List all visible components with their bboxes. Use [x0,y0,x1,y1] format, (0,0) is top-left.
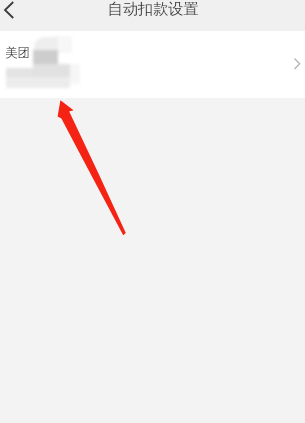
button[interactable]: 美团 [0,31,305,98]
staticText: 自动扣款设置 [107,0,199,18]
staticText: 美团 [5,45,31,61]
button[interactable]: Back [0,0,26,31]
